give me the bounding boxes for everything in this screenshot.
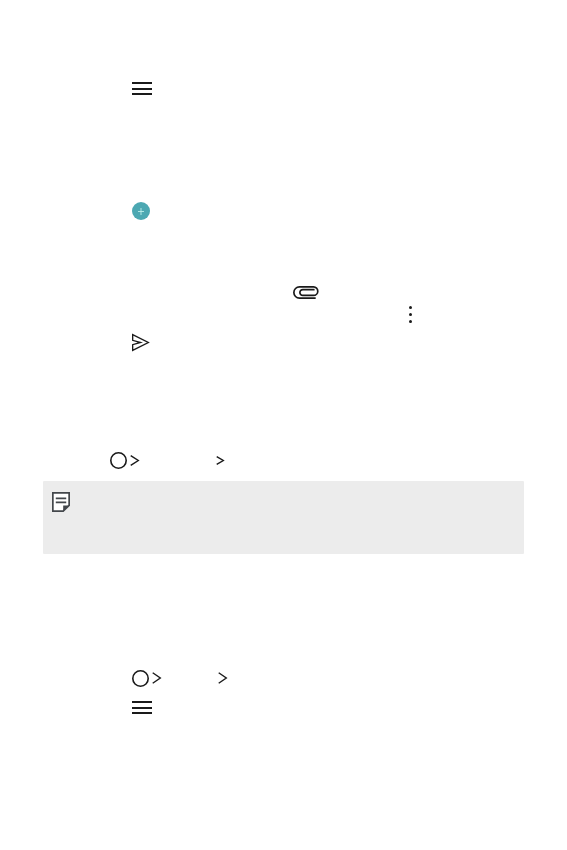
button[interactable]: Expand account — [128, 665, 166, 691]
button[interactable]: Next — [210, 665, 235, 691]
button[interactable]: More options — [396, 292, 424, 336]
button[interactable]: Attach — [283, 277, 327, 307]
button[interactable]: Send — [122, 325, 159, 360]
button[interactable]: Expand account — [106, 448, 143, 474]
button[interactable]: Menu — [110, 685, 174, 729]
button[interactable]: Menu — [110, 66, 174, 110]
button[interactable]: Add — [132, 202, 150, 220]
button[interactable] — [43, 481, 524, 554]
button[interactable]: Next — [208, 448, 232, 474]
